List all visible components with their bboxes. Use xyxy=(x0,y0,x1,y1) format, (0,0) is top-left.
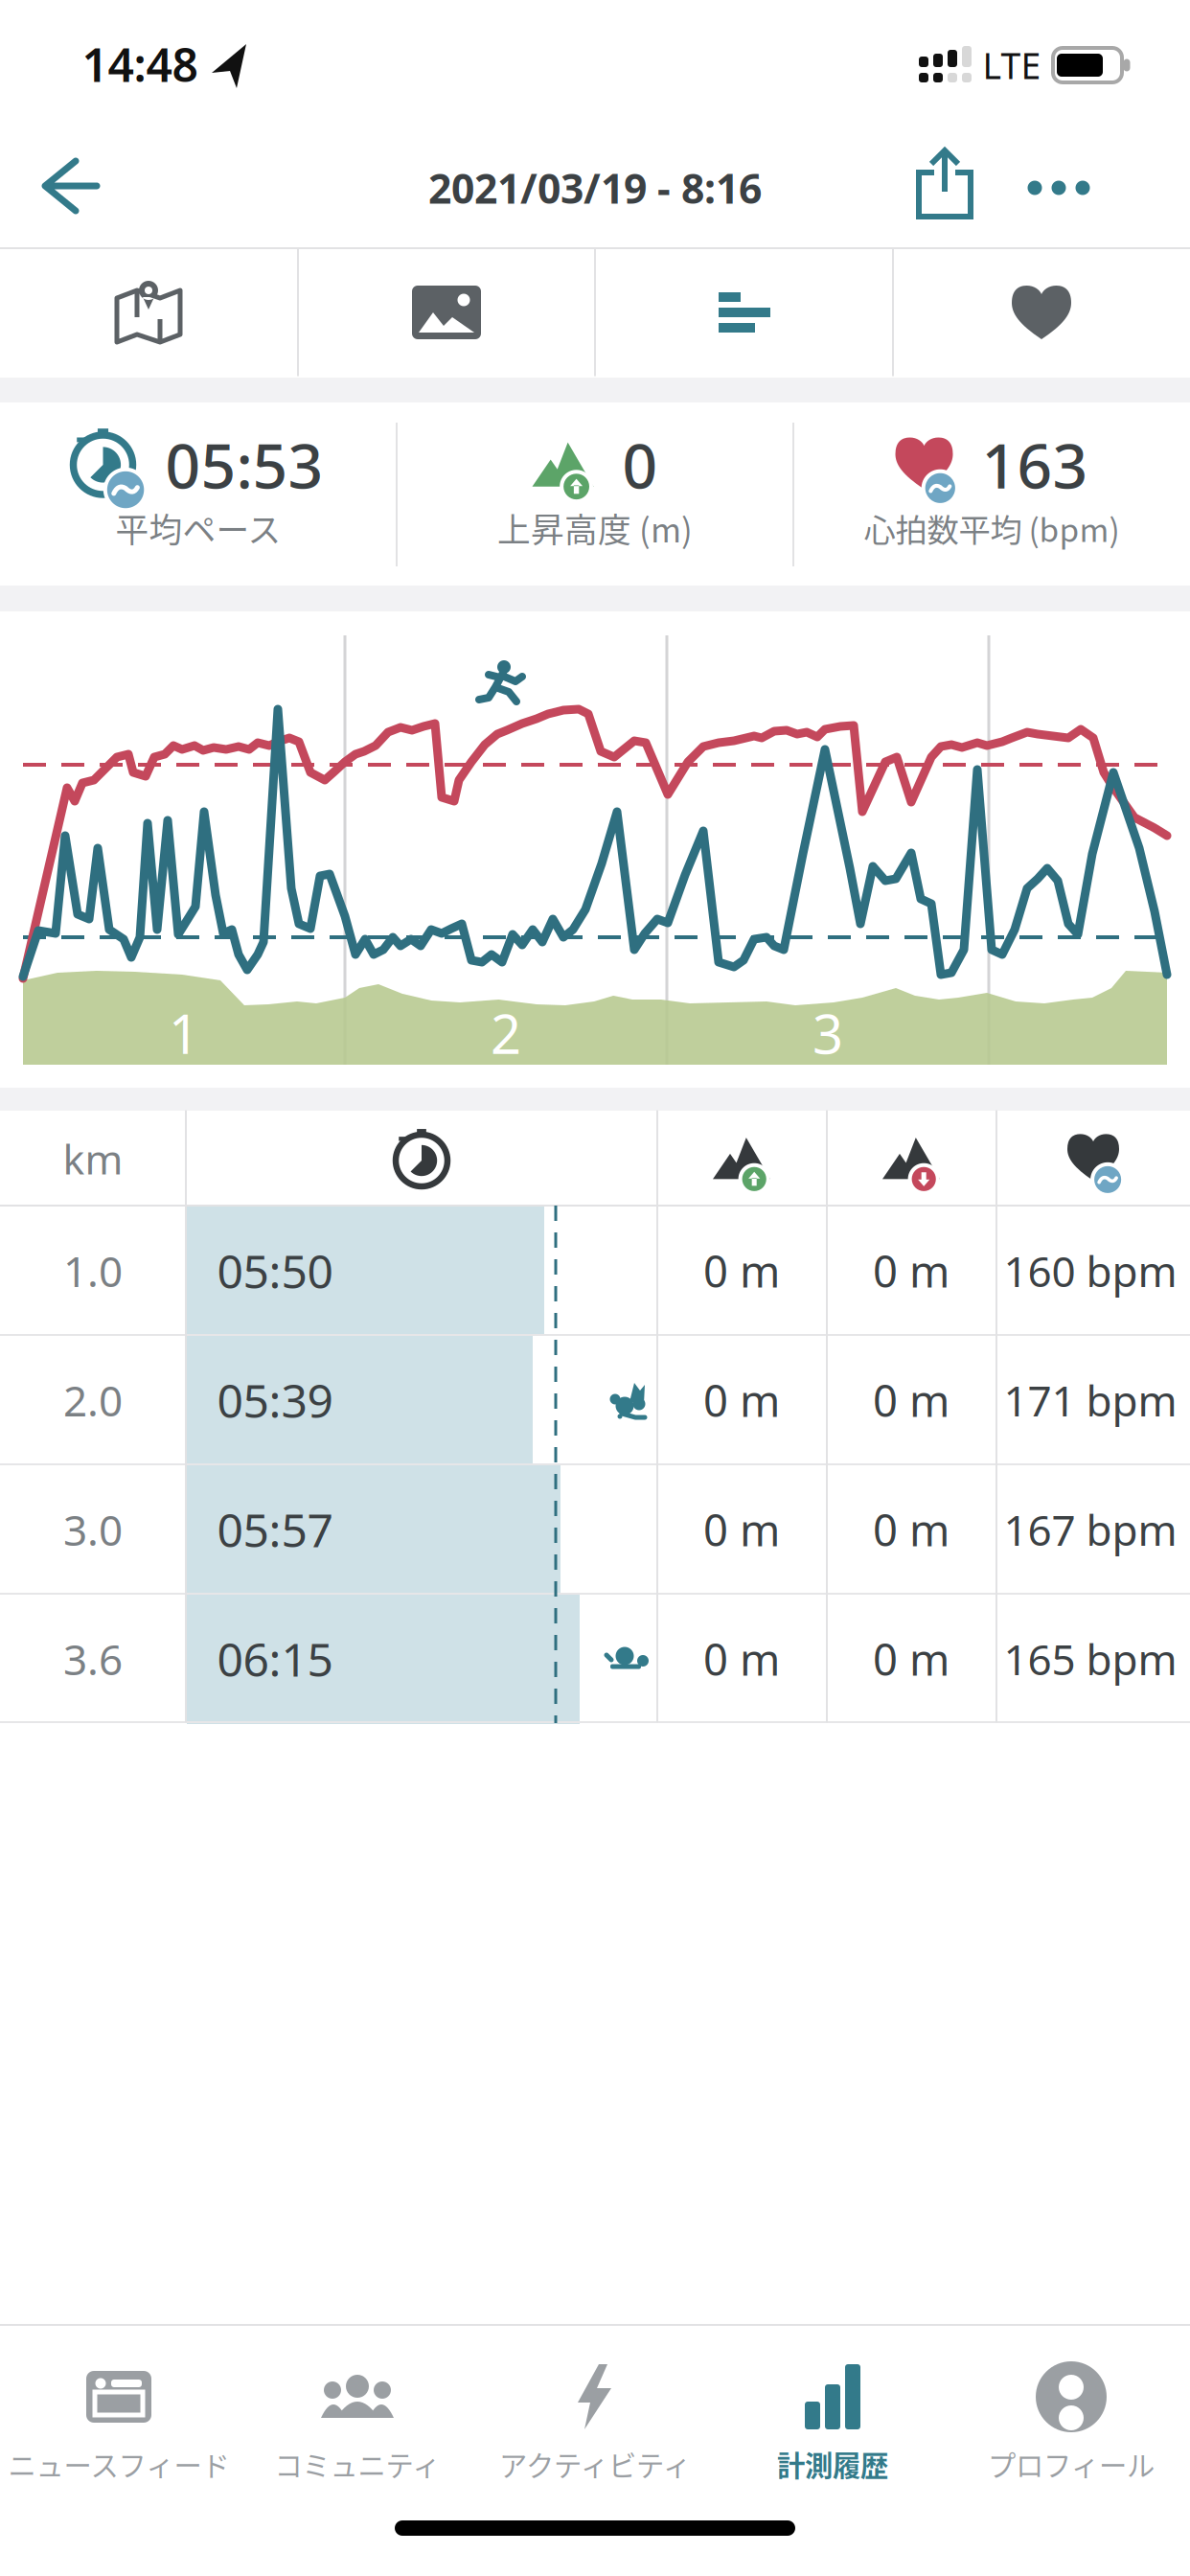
staticText: 平均ペース xyxy=(115,504,281,552)
staticText: コミュニティ xyxy=(275,2444,440,2484)
staticText: 1 xyxy=(169,997,199,1069)
staticText: 0 m xyxy=(703,1501,780,1558)
button[interactable]: Photos xyxy=(412,286,481,339)
staticText: km xyxy=(63,1132,123,1186)
staticText: 0 m xyxy=(873,1630,950,1688)
staticText: 0 m xyxy=(873,1501,950,1558)
button[interactable]: アクティビティ xyxy=(480,2337,710,2491)
staticText: 2021/03/19 - 8:16 xyxy=(428,161,762,215)
staticText: 0 m xyxy=(873,1242,950,1300)
button[interactable]: Map xyxy=(113,281,184,344)
staticText: ニュースフィード xyxy=(8,2444,229,2484)
button[interactable]: Splits xyxy=(719,292,770,333)
staticText: 05:53 xyxy=(165,424,323,506)
button[interactable]: プロフィール xyxy=(956,2337,1186,2491)
staticText: 3.6 xyxy=(63,1631,123,1687)
button[interactable]: More xyxy=(1028,181,1090,195)
staticText: 163 xyxy=(982,424,1088,506)
staticText: 計測履歴 xyxy=(777,2444,888,2484)
button[interactable]: Like xyxy=(1012,286,1071,339)
staticText: 0 m xyxy=(873,1371,950,1429)
staticText: 05:39 xyxy=(217,1370,333,1431)
staticText: 上昇高度 (m) xyxy=(497,504,693,552)
button[interactable]: ニュースフィード xyxy=(4,2337,234,2491)
staticText: 1.0 xyxy=(63,1243,123,1299)
staticText: 2.0 xyxy=(63,1372,123,1428)
staticText: LTE xyxy=(983,41,1041,89)
staticText: 14:48 xyxy=(82,34,198,95)
staticText: 05:57 xyxy=(217,1499,333,1560)
button[interactable]: Share xyxy=(915,148,974,220)
button[interactable]: Back xyxy=(37,161,101,215)
staticText: 171 bpm xyxy=(1004,1372,1177,1428)
staticText: 0 m xyxy=(703,1371,780,1429)
button[interactable]: 計測履歴 xyxy=(718,2337,948,2491)
staticText: 05:50 xyxy=(217,1240,333,1301)
staticText: 06:15 xyxy=(217,1628,333,1689)
staticText: 165 bpm xyxy=(1004,1631,1177,1687)
staticText: 3 xyxy=(812,997,843,1069)
staticText: 160 bpm xyxy=(1004,1243,1177,1299)
staticText: 0 m xyxy=(703,1630,780,1688)
staticText: 3.0 xyxy=(63,1502,123,1557)
staticText: アクティビティ xyxy=(499,2444,691,2484)
staticText: 2 xyxy=(491,997,521,1069)
staticText: 167 bpm xyxy=(1004,1502,1177,1557)
button[interactable]: コミュニティ xyxy=(242,2337,472,2491)
staticText: プロフィール xyxy=(988,2444,1155,2484)
staticText: 0 xyxy=(622,424,658,506)
staticText: 0 m xyxy=(703,1242,780,1300)
staticText: 心拍数平均 (bpm) xyxy=(864,505,1120,551)
